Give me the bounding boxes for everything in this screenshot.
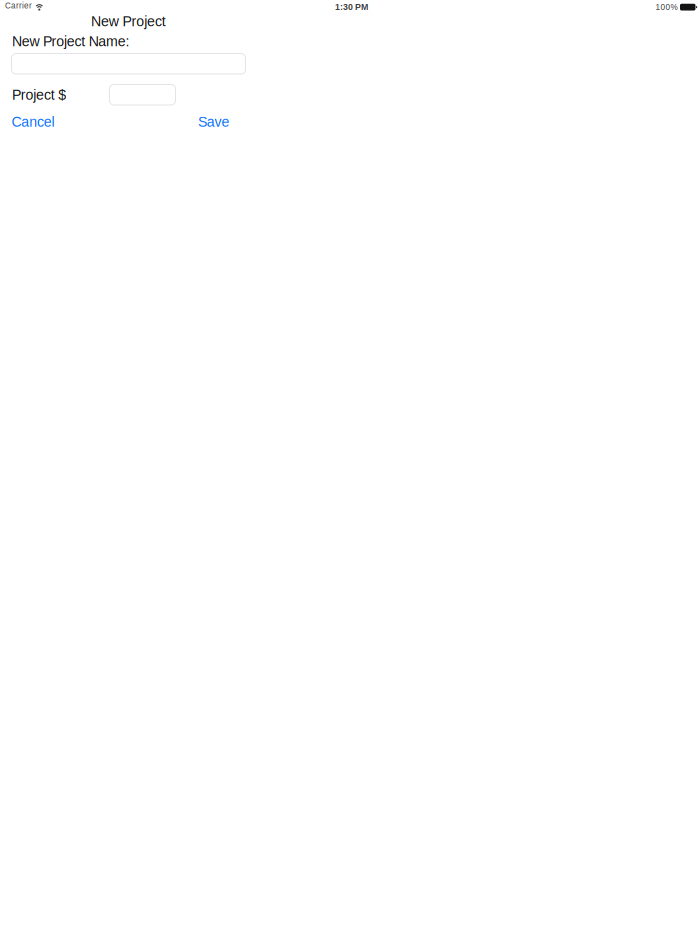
staticText: 100% (655, 3, 677, 12)
staticText: Save (198, 114, 229, 130)
button[interactable]: Save (192, 110, 235, 134)
button[interactable]: Cancel (5, 110, 61, 134)
staticText: 1:30 PM (335, 2, 368, 12)
staticText: New Project (91, 13, 166, 29)
staticText: Project $ (12, 87, 66, 103)
staticText: New Project Name: (12, 33, 129, 49)
staticText: Cancel (11, 114, 55, 130)
staticText: Carrier (5, 1, 32, 10)
